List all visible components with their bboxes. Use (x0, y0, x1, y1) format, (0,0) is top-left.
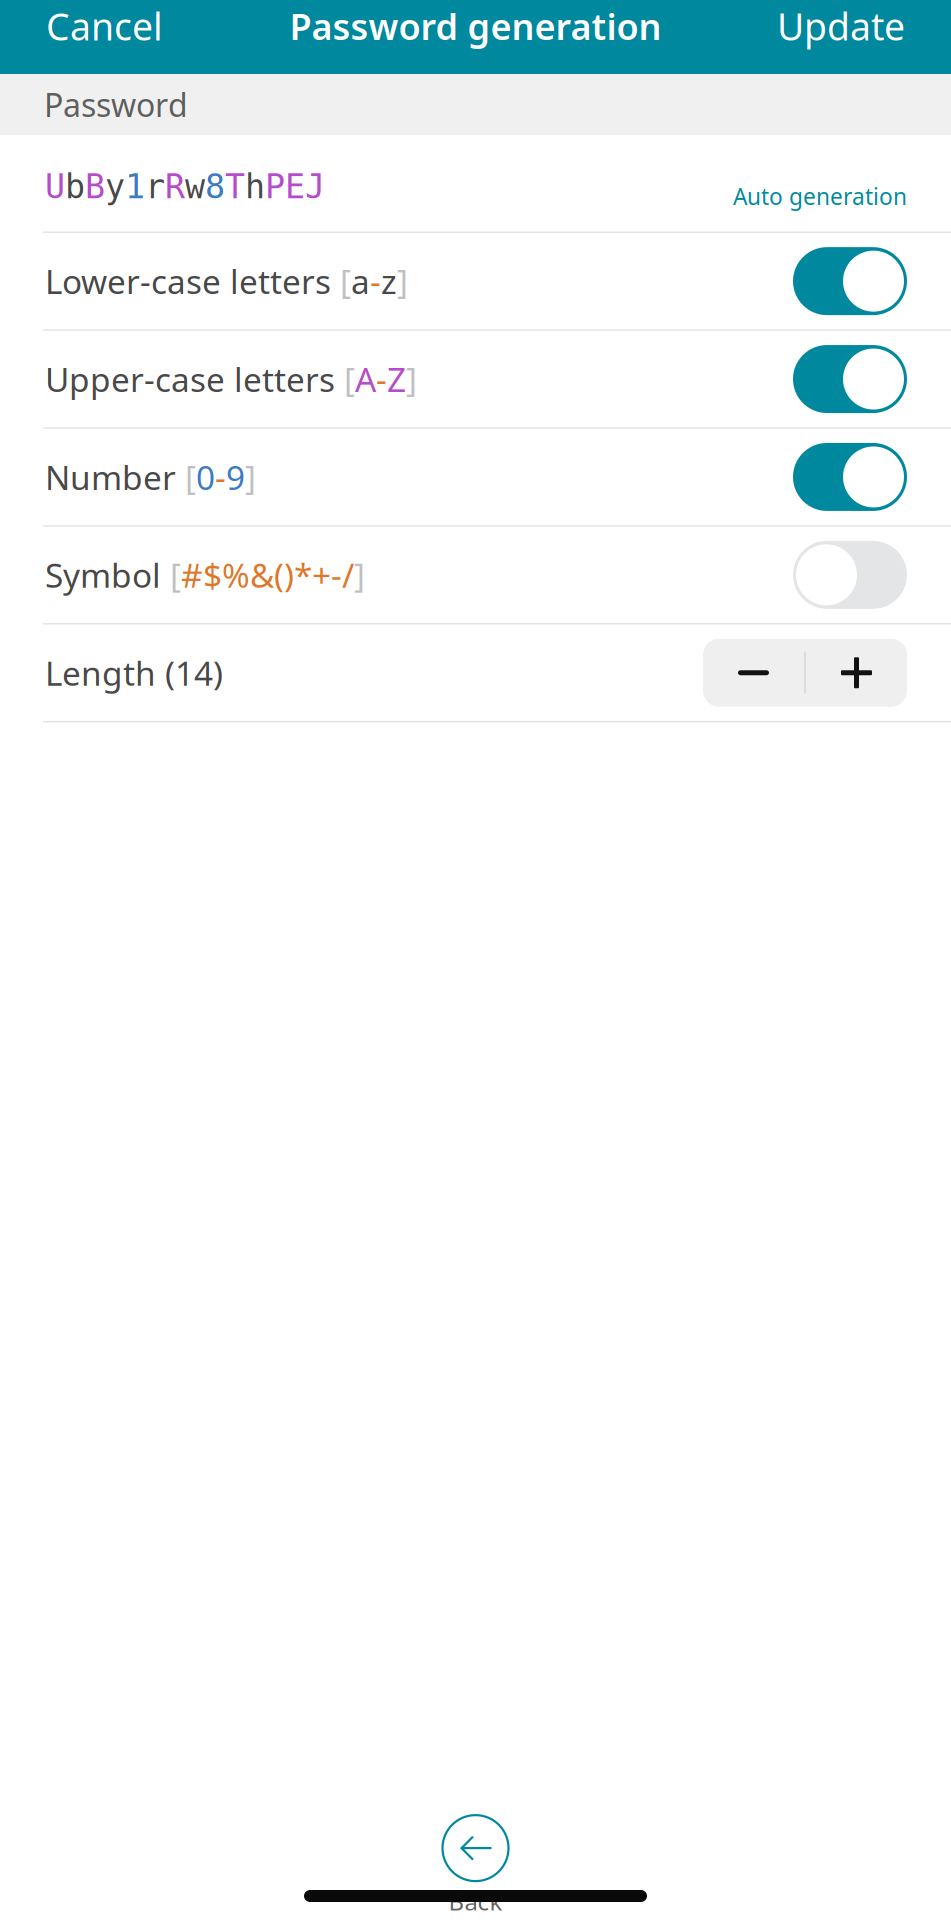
staticText: z (381, 259, 397, 303)
button[interactable]: Lower-case letters (793, 247, 907, 315)
staticText: 0 (196, 455, 215, 499)
staticText: Password generation (289, 2, 661, 50)
staticText: B (85, 168, 105, 206)
button[interactable]: Decrease length (703, 639, 804, 707)
staticText: [ (161, 553, 181, 597)
staticText: 1 (125, 168, 145, 206)
staticText: U (45, 168, 65, 206)
staticText: R (165, 168, 185, 206)
staticText: w (185, 168, 205, 206)
staticText: r (145, 168, 165, 206)
staticText: P (265, 168, 285, 206)
staticText: Lower-case letters (45, 259, 331, 303)
button[interactable]: Auto generation (733, 145, 907, 221)
staticText: ] (397, 259, 408, 303)
staticText: Password (44, 83, 188, 126)
button[interactable]: Increase length (806, 639, 907, 707)
staticText: E (285, 168, 305, 206)
button[interactable]: Cancel (0, 0, 187, 52)
staticText: [ (331, 259, 351, 303)
staticText: 9 (226, 455, 245, 499)
staticText: 8 (205, 168, 225, 206)
staticText: Symbol (45, 553, 161, 597)
staticText: ] (245, 455, 256, 499)
staticText: Length (14) (45, 651, 223, 695)
staticText: #$%&()*+-/ (181, 553, 354, 597)
staticText: Back (448, 1885, 502, 1917)
button[interactable]: Symbol (793, 541, 907, 609)
staticText: Update (777, 1, 905, 51)
staticText: - (215, 455, 226, 499)
staticText: a (351, 259, 370, 303)
staticText: Cancel (46, 1, 163, 51)
staticText: Upper-case letters (45, 357, 335, 401)
staticText: A (355, 357, 376, 401)
button[interactable]: Update (753, 0, 951, 52)
button[interactable]: Number (793, 443, 907, 511)
staticText: [ (335, 357, 355, 401)
staticText: b (65, 168, 85, 206)
staticText: Number (45, 455, 176, 499)
staticText: [ (176, 455, 196, 499)
staticText: T (225, 168, 245, 206)
button[interactable]: Back (375, 1815, 575, 1917)
staticText: Auto generation (733, 181, 907, 211)
staticText: y (105, 168, 125, 206)
button[interactable]: Upper-case letters (793, 345, 907, 413)
staticText: Z (387, 357, 406, 401)
staticText: h (245, 168, 265, 206)
staticText: ] (354, 553, 365, 597)
staticText: J (305, 168, 325, 206)
staticText: ] (406, 357, 417, 401)
staticText: - (370, 259, 381, 303)
staticText: - (376, 357, 387, 401)
